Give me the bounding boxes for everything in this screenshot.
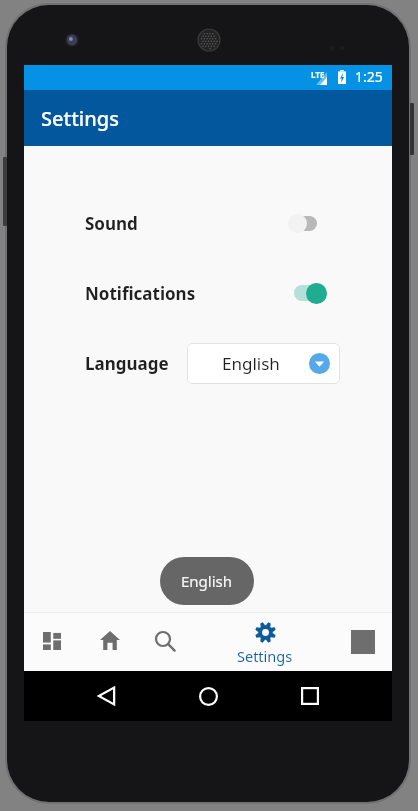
staticText: Notifications <box>85 282 196 305</box>
button[interactable]: Settings <box>229 612 301 671</box>
staticText: Settings <box>41 105 119 132</box>
staticText: 1:25 <box>355 67 383 86</box>
button[interactable]: English <box>187 343 340 384</box>
staticText: LTE <box>311 69 325 80</box>
button[interactable]: More <box>339 630 387 678</box>
staticText: Language <box>85 352 169 375</box>
button[interactable]: Recents <box>286 672 334 720</box>
staticText: English <box>222 352 280 375</box>
staticText: English <box>181 571 233 591</box>
button[interactable]: English <box>160 557 254 605</box>
button[interactable]: Dashboard <box>24 612 80 671</box>
button[interactable]: Back <box>82 672 130 720</box>
button[interactable] <box>283 207 331 239</box>
button[interactable]: Search <box>137 612 193 671</box>
button[interactable] <box>288 277 336 309</box>
staticText: Sound <box>85 212 138 235</box>
button[interactable]: Home <box>184 672 232 720</box>
button[interactable]: Home <box>82 612 138 671</box>
staticText: Settings <box>237 646 293 666</box>
